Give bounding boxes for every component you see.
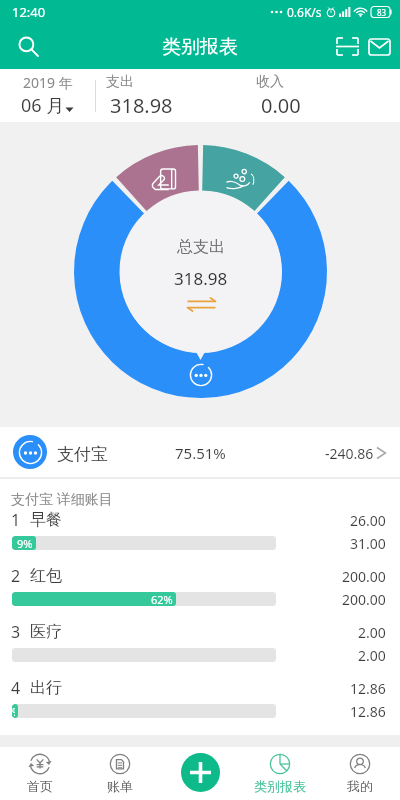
staticText: % [12,704,15,718]
staticText: 318.98 [174,267,228,290]
staticText: 支付宝 详细账目 [11,489,113,508]
staticText: 收入 [256,73,284,91]
staticText: 账单 [107,778,133,794]
button[interactable]: Messages [359,24,400,69]
staticText: 出行 [30,678,62,698]
staticText: 2 [11,565,21,587]
staticText: 06 月 [21,93,65,118]
staticText: 支付宝 [57,444,108,465]
staticText: 首页 [27,778,53,794]
staticText: 早餐 [30,510,62,530]
staticText: 26.00 [350,511,386,530]
staticText: 31.00 [350,534,386,553]
staticText: -240.86 [325,444,374,463]
staticText: 0.00 [261,92,301,119]
staticText: 83 [377,7,387,18]
staticText: 12.86 [350,679,386,698]
button[interactable]: 支付宝 [0,427,400,477]
staticText: 类别报表 [162,35,238,59]
staticText: 支出 [106,73,134,91]
button[interactable]: 2019 年 [0,69,95,122]
staticText: 12:40 [12,3,46,21]
staticText: 75.51% [175,443,226,463]
button[interactable]: Add record [181,753,220,792]
staticText: 200.00 [342,590,386,609]
staticText: 200.00 [342,567,386,586]
staticText: 4 [11,677,21,699]
button[interactable]: 首页 [0,747,80,800]
button[interactable]: 2 [0,565,400,621]
button[interactable]: 我的 [320,747,400,800]
staticText: 2.00 [358,623,386,642]
staticText: 1 [11,509,21,531]
button[interactable]: 1 [0,509,400,565]
button[interactable]: Search [5,24,51,69]
button[interactable]: 3 [0,621,400,677]
staticText: 0.6K/s [287,4,322,20]
staticText: 9% [17,536,33,550]
staticText: 62% [151,592,173,606]
staticText: 2.00 [358,646,386,665]
button[interactable]: 4 [0,677,400,733]
button[interactable]: Scan [325,24,370,69]
staticText: 总支出 [177,237,225,257]
staticText: 红包 [30,566,62,586]
staticText: 我的 [347,778,373,794]
staticText: 3 [11,621,21,643]
staticText: 2019 年 [23,73,73,92]
button[interactable]: 类别报表 [240,747,320,800]
staticText: 医疗 [30,622,62,642]
staticText: 类别报表 [254,778,306,794]
staticText: 12.86 [350,702,386,721]
button[interactable]: 账单 [80,747,160,800]
staticText: 318.98 [110,92,173,119]
